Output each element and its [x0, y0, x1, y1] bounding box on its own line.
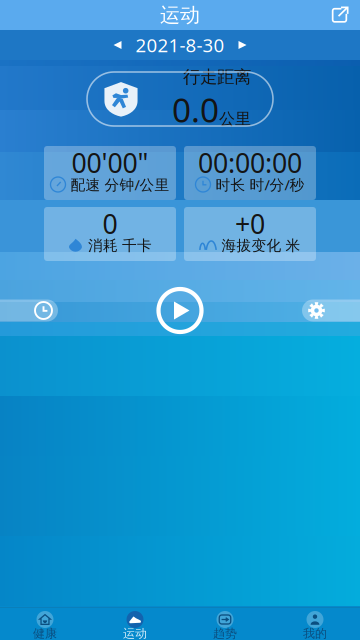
button[interactable]: Start workout [158, 289, 201, 332]
button[interactable]: Next day [230, 33, 254, 57]
staticText: 00'00" [71, 145, 148, 180]
staticText: 运动 [160, 3, 200, 27]
staticText: 公里 [219, 109, 251, 129]
button[interactable]: 运动 [90, 608, 180, 640]
staticText: 0 [102, 206, 117, 241]
button[interactable]: 行走距离 [87, 72, 273, 126]
button[interactable]: History [0, 299, 78, 321]
staticText: 2021-8-30 [135, 33, 224, 57]
staticText: 趋势 [213, 626, 237, 640]
button[interactable]: 趋势 [180, 608, 270, 640]
staticText: 海拔变化 米 [221, 236, 300, 254]
button[interactable]: 我的 [270, 608, 360, 640]
button[interactable]: Settings [282, 299, 360, 321]
staticText: +0 [235, 206, 265, 241]
staticText: 健康 [33, 626, 57, 640]
button[interactable]: Share [319, 0, 360, 29]
staticText: 时长 时/分/秒 [215, 175, 304, 194]
staticText: 消耗 千卡 [88, 236, 152, 254]
staticText: 行走距离 [183, 66, 251, 87]
staticText: 配速 分钟/公里 [70, 175, 169, 194]
button[interactable]: Previous day [105, 33, 129, 57]
staticText: 我的 [303, 626, 327, 640]
button[interactable]: 健康 [0, 608, 90, 640]
staticText: 00:00:00 [198, 145, 302, 180]
staticText: 0.0 [172, 87, 219, 132]
staticText: 运动 [123, 626, 147, 640]
